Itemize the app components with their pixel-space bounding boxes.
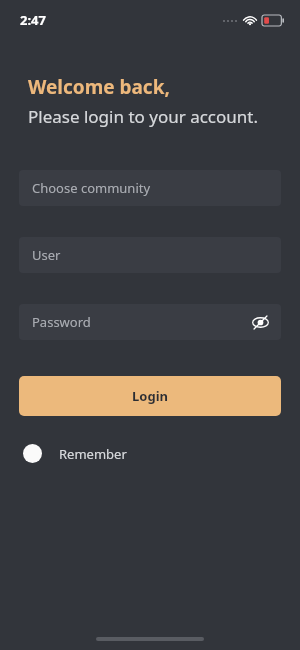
staticText: Remember	[59, 445, 127, 463]
button[interactable]: Remember	[19, 440, 131, 467]
staticText: User	[32, 246, 61, 264]
staticText: Login	[132, 387, 168, 405]
staticText: Welcome back,	[28, 74, 170, 100]
button[interactable]: Show password	[247, 309, 273, 335]
button[interactable]: Password	[19, 304, 281, 340]
button[interactable]: Login	[19, 376, 281, 416]
staticText: Please login to your account.	[28, 105, 258, 128]
staticText: Password	[32, 313, 91, 331]
staticText: Choose community	[32, 179, 151, 197]
staticText: 2:47	[20, 11, 46, 29]
button[interactable]: User	[19, 237, 281, 273]
button[interactable]: Choose community	[19, 170, 281, 206]
